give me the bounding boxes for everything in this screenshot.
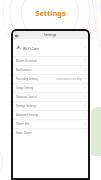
staticText: continuous recording <box>56 77 83 81</box>
staticText: Motion Detection <box>16 59 38 63</box>
staticText: Recording Setting <box>16 77 38 81</box>
staticText: Wi-Fi Cam <box>23 46 39 50</box>
staticText: Settings <box>0 8 101 18</box>
staticText: Notifications <box>16 68 32 72</box>
button[interactable]: Wi-Fi Cam <box>12 39 89 56</box>
button[interactable]: Motion Detection <box>12 56 89 65</box>
staticText: Advanced Settings <box>16 113 39 117</box>
button[interactable]: Image Setting <box>12 83 89 92</box>
button[interactable]: Back <box>15 34 19 38</box>
staticText: Storage Settings <box>16 104 37 108</box>
button[interactable]: Advanced Settings <box>12 110 89 119</box>
button[interactable]: Storage Settings <box>12 101 89 110</box>
button[interactable]: Device Info <box>12 119 89 128</box>
button[interactable]: Share Device <box>12 128 89 137</box>
staticText: Direction Control <box>16 95 37 99</box>
staticText: Settings <box>44 33 57 37</box>
staticText: Device Info <box>16 122 30 126</box>
staticText: Share Device <box>16 131 32 135</box>
button[interactable]: Notifications <box>12 65 89 74</box>
staticText: Image Setting <box>16 86 34 90</box>
button[interactable]: Recording Setting <box>12 74 89 83</box>
button[interactable]: Direction Control <box>12 92 89 101</box>
